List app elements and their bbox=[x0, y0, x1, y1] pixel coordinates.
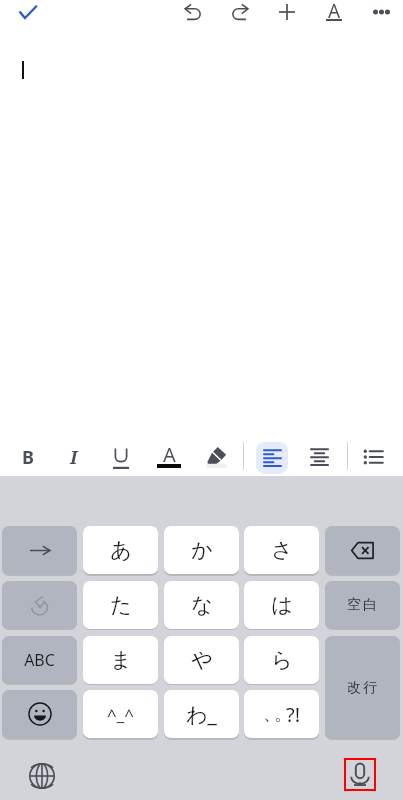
staticText: 、 bbox=[263, 703, 274, 726]
button[interactable]: Undo bbox=[2, 581, 77, 629]
staticText: や bbox=[191, 647, 213, 673]
button[interactable]: ^_^ bbox=[83, 690, 158, 738]
button[interactable]: Bold bbox=[10, 439, 46, 475]
staticText: 空白 bbox=[347, 596, 379, 614]
staticText: ABC bbox=[24, 649, 55, 671]
staticText: は bbox=[271, 592, 293, 618]
button[interactable]: Add bbox=[272, 0, 302, 25]
staticText: A bbox=[163, 441, 176, 467]
button[interactable]: Highlight bbox=[198, 439, 234, 475]
staticText: わ_ bbox=[186, 700, 217, 729]
staticText: A bbox=[328, 0, 341, 20]
staticText: ま bbox=[110, 647, 132, 673]
button[interactable]: Bulleted list bbox=[355, 439, 391, 475]
button[interactable]: さ bbox=[244, 526, 319, 574]
button[interactable]: あ bbox=[83, 526, 158, 574]
button[interactable]: Redo bbox=[225, 0, 255, 25]
staticText: ?! bbox=[286, 701, 301, 728]
button[interactable]: や bbox=[164, 636, 239, 684]
staticText: な bbox=[191, 592, 213, 618]
button[interactable]: Text format bbox=[319, 0, 349, 25]
button[interactable]: Align centre bbox=[301, 439, 337, 475]
button[interactable]: ま bbox=[83, 636, 158, 684]
button[interactable]: Undo bbox=[177, 0, 207, 25]
button[interactable]: な bbox=[164, 581, 239, 629]
button[interactable]: Italic bbox=[56, 439, 92, 475]
staticText: 改行 bbox=[347, 679, 379, 697]
button[interactable]: ら bbox=[244, 636, 319, 684]
button[interactable]: More options bbox=[366, 0, 396, 25]
button[interactable]: ABC bbox=[2, 636, 77, 684]
button[interactable]: 空白 bbox=[325, 581, 400, 629]
button[interactable]: か bbox=[164, 526, 239, 574]
staticText: ら bbox=[271, 647, 293, 673]
button[interactable]: Move cursor right bbox=[2, 526, 77, 574]
button[interactable]: Emoji bbox=[2, 690, 77, 738]
button[interactable]: Underline bbox=[103, 439, 139, 475]
button[interactable]: は bbox=[244, 581, 319, 629]
button[interactable]: わ_ bbox=[164, 690, 239, 738]
staticText: た bbox=[110, 592, 132, 618]
button[interactable]: 、 bbox=[244, 690, 319, 738]
staticText: あ bbox=[110, 537, 132, 563]
staticText: か bbox=[191, 537, 213, 563]
staticText: 。 bbox=[274, 703, 286, 726]
button[interactable]: Change keyboard bbox=[24, 758, 60, 794]
button[interactable]: Align left bbox=[256, 442, 288, 474]
button[interactable]: Voice input bbox=[344, 758, 376, 791]
staticText: I bbox=[70, 445, 78, 470]
button[interactable]: Text colour bbox=[151, 439, 187, 475]
button[interactable]: Done bbox=[11, 0, 45, 25]
button[interactable]: た bbox=[83, 581, 158, 629]
button[interactable]: 改行 bbox=[325, 636, 400, 739]
button[interactable]: Delete bbox=[325, 526, 400, 574]
staticText: ^_^ bbox=[107, 703, 134, 726]
staticText: さ bbox=[271, 537, 293, 563]
staticText: B bbox=[22, 445, 34, 470]
